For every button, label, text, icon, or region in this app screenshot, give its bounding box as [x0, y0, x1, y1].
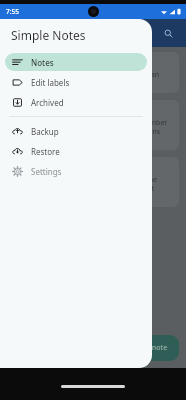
staticText: Milk, eggs, bread, spinach, olive oil. R… [13, 118, 173, 145]
button[interactable]: Settings [5, 162, 147, 180]
staticText: Settings [31, 166, 62, 177]
button[interactable]: Backup [5, 122, 147, 140]
button[interactable]: Daily habits [7, 52, 179, 93]
staticText: Backup [31, 126, 59, 137]
staticText: Archived [31, 97, 64, 108]
button[interactable]: Project ideas [7, 157, 179, 207]
button[interactable]: Groceries [7, 100, 179, 150]
staticText: Sketch the onboarding flow. Write down t… [13, 175, 173, 202]
staticText: 7:55 [6, 7, 19, 16]
staticText: Daily habits [13, 57, 58, 68]
staticText: Simple Notes [11, 27, 86, 43]
button[interactable]: Edit labels [5, 73, 147, 91]
button[interactable]: Search [158, 23, 178, 43]
staticText: New note [135, 343, 168, 353]
button[interactable]: New note [123, 335, 179, 361]
button[interactable]: Archived [5, 93, 147, 111]
button[interactable]: Notes [5, 53, 147, 71]
staticText: Drink water. Read a book for 20 min. Tak… [13, 70, 173, 88]
staticText: Project ideas [13, 162, 62, 173]
staticText: Groceries [13, 105, 50, 116]
button[interactable]: Restore [5, 142, 147, 160]
staticText: Edit labels [31, 77, 70, 88]
staticText: Restore [31, 146, 60, 157]
staticText: Notes [31, 57, 54, 68]
